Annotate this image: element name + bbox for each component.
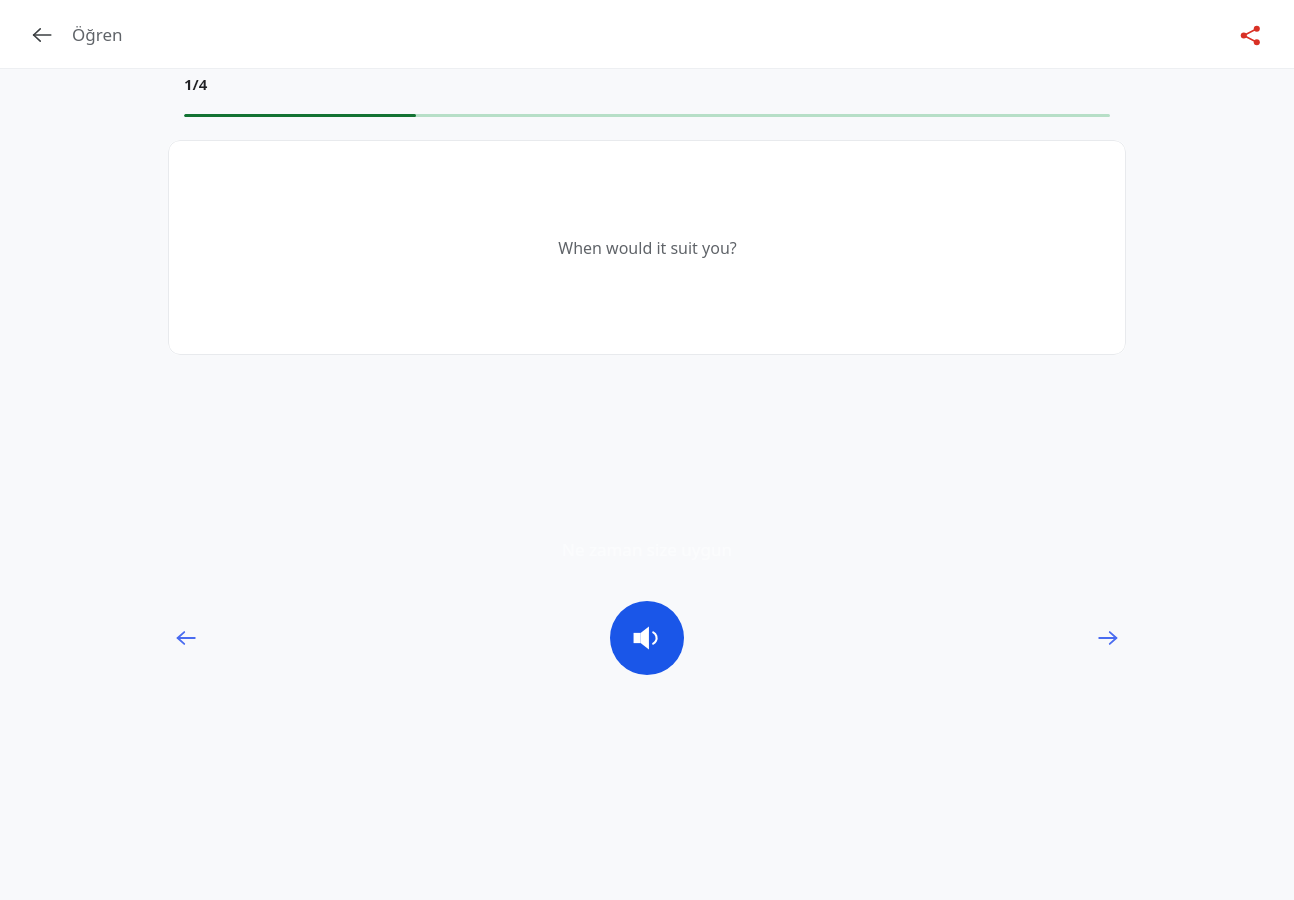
button[interactable]: Next (1078, 608, 1138, 668)
button[interactable]: When would it suit you? (168, 140, 1126, 355)
staticText: When would it suit you? (558, 237, 737, 259)
button[interactable]: Share (1228, 13, 1272, 57)
staticText: Öğren (72, 23, 123, 46)
staticText: 1/4 (184, 74, 208, 94)
button[interactable]: Play audio (610, 601, 684, 675)
button[interactable]: Back (20, 13, 64, 57)
button[interactable]: Previous (156, 608, 216, 668)
